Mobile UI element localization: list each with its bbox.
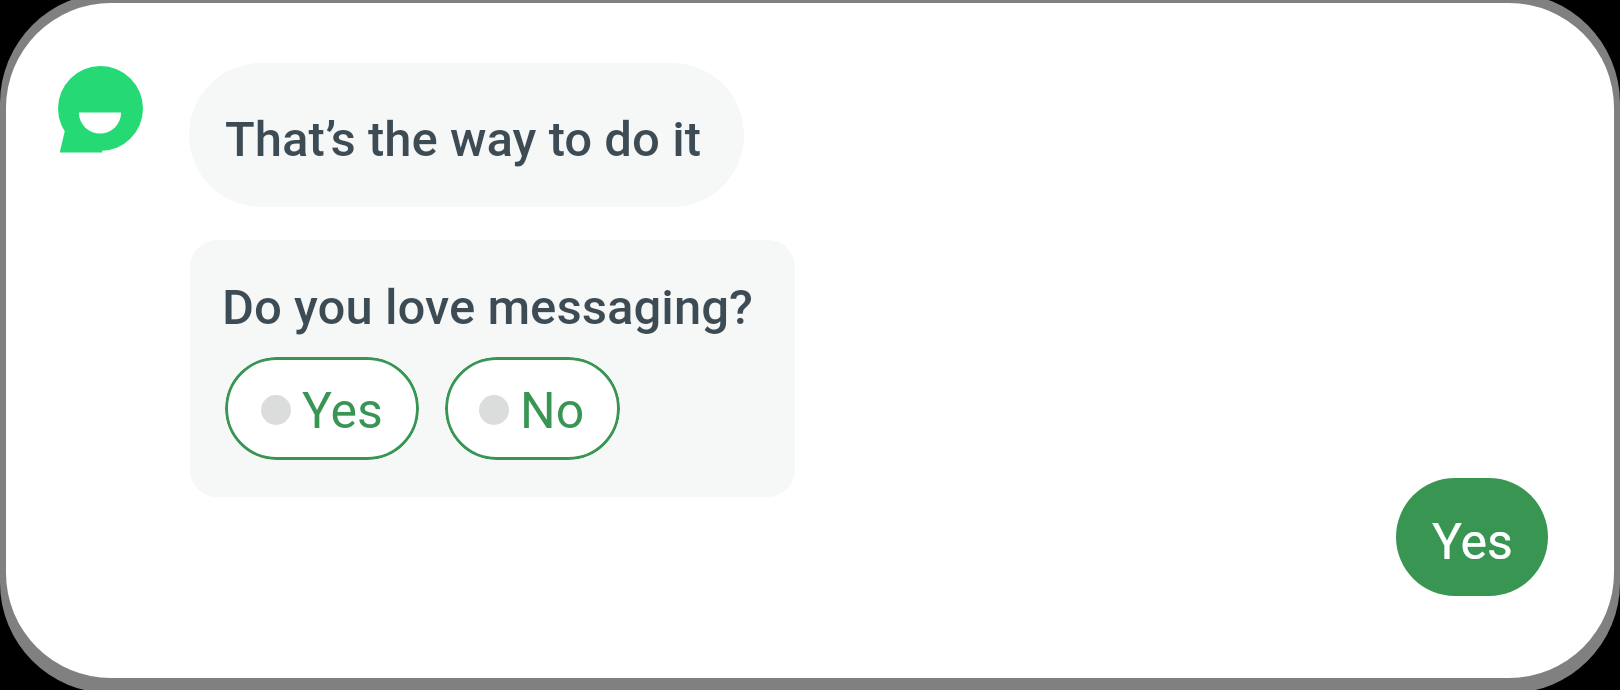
staticText: Yes [1432,513,1513,572]
button[interactable]: That’s the way to do it [189,63,744,207]
button[interactable]: Yes [1396,478,1548,596]
staticText: Do you love messaging? [222,279,753,336]
staticText: No [520,382,585,441]
button[interactable]: Do you love messaging? [190,240,795,497]
staticText: Yes [302,382,383,441]
button[interactable]: Yes [225,357,419,460]
other: Contact avatar [58,66,143,153]
button[interactable]: No [445,357,620,460]
staticText: That’s the way to do it [225,111,701,168]
